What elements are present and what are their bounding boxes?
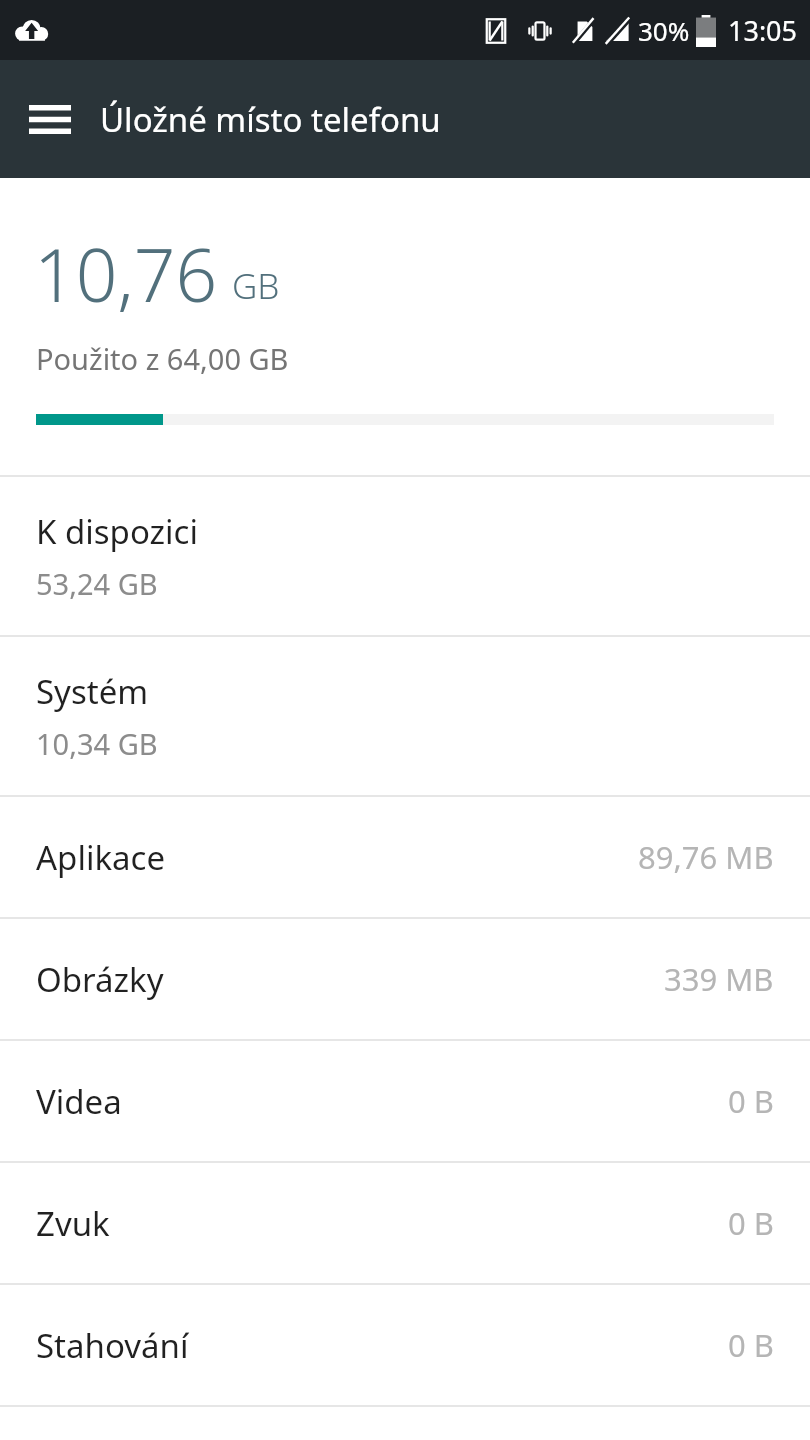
staticText: Aplikace — [36, 835, 165, 880]
staticText: 30% — [638, 13, 690, 48]
staticText: 89,76 MB — [638, 836, 774, 878]
staticText: 13:05 — [728, 12, 798, 49]
staticText: Použito z 64,00 GB — [36, 339, 289, 378]
staticText: GB — [232, 262, 280, 310]
staticText: Systém — [36, 669, 149, 714]
button[interactable]: Open navigation menu — [12, 81, 88, 157]
button[interactable]: Zvuk — [0, 1163, 810, 1283]
button[interactable]: Aplikace — [0, 797, 810, 917]
staticText: K dispozici — [36, 509, 198, 554]
staticText: 10,76 — [34, 224, 218, 323]
button[interactable]: K dispozici — [0, 477, 810, 635]
staticText: Úložné místo telefonu — [100, 97, 441, 142]
button[interactable]: Stahování — [0, 1285, 810, 1405]
staticText: Videa — [36, 1079, 122, 1124]
button[interactable]: Videa — [0, 1041, 810, 1161]
staticText: 0 B — [728, 1080, 774, 1122]
staticText: 0 B — [728, 1202, 774, 1244]
staticText: Zvuk — [36, 1201, 110, 1246]
staticText: Obrázky — [36, 957, 164, 1002]
staticText: 53,24 GB — [36, 564, 158, 603]
staticText: 339 MB — [664, 958, 774, 1000]
staticText: Stahování — [36, 1323, 189, 1368]
button[interactable]: Obrázky — [0, 919, 810, 1039]
button[interactable]: Systém — [0, 637, 810, 795]
staticText: 0 B — [728, 1324, 774, 1366]
staticText: 10,34 GB — [36, 724, 158, 763]
